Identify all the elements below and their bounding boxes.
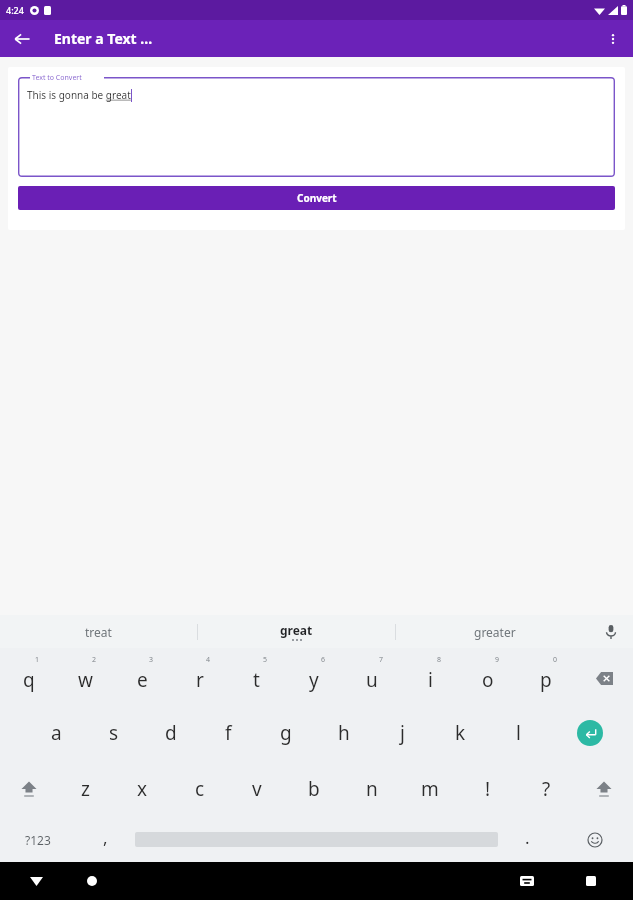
button[interactable]: 1	[0, 648, 57, 705]
button[interactable]: 2	[57, 648, 114, 705]
staticText: 2	[92, 655, 97, 665]
staticText: m	[421, 776, 439, 802]
staticText: r	[196, 667, 204, 693]
button[interactable]: 9	[459, 648, 517, 705]
button[interactable]: Shift	[575, 761, 633, 817]
button[interactable]: Enter	[547, 705, 633, 761]
staticText: .	[525, 826, 530, 849]
button[interactable]: Shift	[0, 761, 57, 817]
staticText: !	[485, 776, 491, 802]
button[interactable]: !	[459, 761, 517, 817]
staticText: c	[195, 776, 205, 802]
staticText: 4:24	[6, 4, 24, 16]
staticText: Enter a Text ...	[54, 29, 153, 48]
staticText: 3	[149, 655, 154, 665]
staticText: 9	[495, 655, 500, 665]
button[interactable]: h	[315, 705, 373, 761]
staticText: b	[308, 776, 320, 802]
button[interactable]: k	[431, 705, 489, 761]
button[interactable]: Backspace	[575, 648, 633, 705]
button[interactable]: 6	[285, 648, 343, 705]
staticText: x	[137, 776, 148, 802]
staticText: l	[516, 720, 521, 746]
staticText: z	[81, 776, 90, 802]
button[interactable]: Space	[135, 817, 498, 862]
button[interactable]: c	[171, 761, 228, 817]
button[interactable]: Emoji	[557, 817, 633, 862]
staticText: 4	[206, 655, 211, 665]
button[interactable]: great	[198, 615, 395, 648]
staticText: n	[366, 776, 378, 802]
staticText: 8	[437, 655, 442, 665]
button[interactable]: a	[28, 705, 85, 761]
staticText: o	[482, 667, 494, 693]
button[interactable]: 0	[517, 648, 575, 705]
staticText: h	[338, 720, 350, 746]
staticText: Convert	[297, 191, 337, 205]
button[interactable]: l	[489, 705, 547, 761]
button[interactable]: treat	[0, 615, 197, 648]
button[interactable]: More options	[597, 23, 629, 55]
button[interactable]: b	[285, 761, 343, 817]
staticText: i	[428, 667, 433, 693]
staticText: d	[165, 720, 177, 746]
button[interactable]: d	[142, 705, 199, 761]
staticText: great	[280, 622, 313, 638]
staticText: k	[455, 720, 466, 746]
staticText: u	[366, 667, 378, 693]
staticText: p	[540, 667, 552, 693]
staticText: w	[78, 667, 93, 693]
button[interactable]: 4	[171, 648, 228, 705]
staticText: v	[252, 776, 262, 802]
staticText: 6	[321, 655, 326, 665]
staticText: y	[309, 667, 319, 693]
staticText: a	[51, 720, 62, 746]
staticText: 1	[35, 655, 40, 665]
staticText: treat	[85, 624, 112, 640]
staticText: f	[225, 720, 232, 746]
button[interactable]: Convert	[18, 186, 615, 210]
button[interactable]: f	[199, 705, 257, 761]
staticText: q	[23, 667, 35, 693]
button[interactable]: ?	[517, 761, 575, 817]
staticText: greater	[474, 624, 516, 640]
button[interactable]: 3	[114, 648, 171, 705]
button[interactable]: Recent apps	[577, 867, 605, 895]
staticText: s	[109, 720, 119, 746]
button[interactable]: 8	[401, 648, 459, 705]
button[interactable]: m	[401, 761, 459, 817]
staticText: 0	[553, 655, 558, 665]
button[interactable]: 7	[343, 648, 401, 705]
button[interactable]: s	[85, 705, 142, 761]
button[interactable]: Voice input	[599, 620, 623, 644]
staticText: e	[137, 667, 148, 693]
button[interactable]: x	[114, 761, 171, 817]
staticText: ?123	[25, 832, 51, 848]
staticText: j	[400, 720, 405, 746]
button[interactable]: .	[498, 817, 557, 862]
button[interactable]: greater	[396, 615, 593, 648]
button[interactable]: j	[373, 705, 431, 761]
staticText: ?	[542, 776, 551, 802]
staticText: Text to Convert	[32, 73, 82, 83]
button[interactable]: Back	[6, 23, 38, 55]
button[interactable]: v	[228, 761, 285, 817]
button[interactable]: Home	[78, 867, 106, 895]
staticText: 7	[379, 655, 384, 665]
button[interactable]: g	[257, 705, 315, 761]
button[interactable]: z	[57, 761, 114, 817]
button[interactable]: Switch keyboard	[513, 867, 541, 895]
staticText: This is gonna be great	[27, 88, 131, 102]
staticText: g	[280, 720, 292, 746]
staticText: t	[253, 667, 260, 693]
button[interactable]: ,	[76, 817, 135, 862]
button[interactable]: n	[343, 761, 401, 817]
button[interactable]: 5	[228, 648, 285, 705]
button[interactable]: Back	[22, 867, 50, 895]
button[interactable]: ?123	[0, 817, 76, 862]
staticText: ,	[103, 826, 108, 849]
staticText: 5	[263, 655, 268, 665]
